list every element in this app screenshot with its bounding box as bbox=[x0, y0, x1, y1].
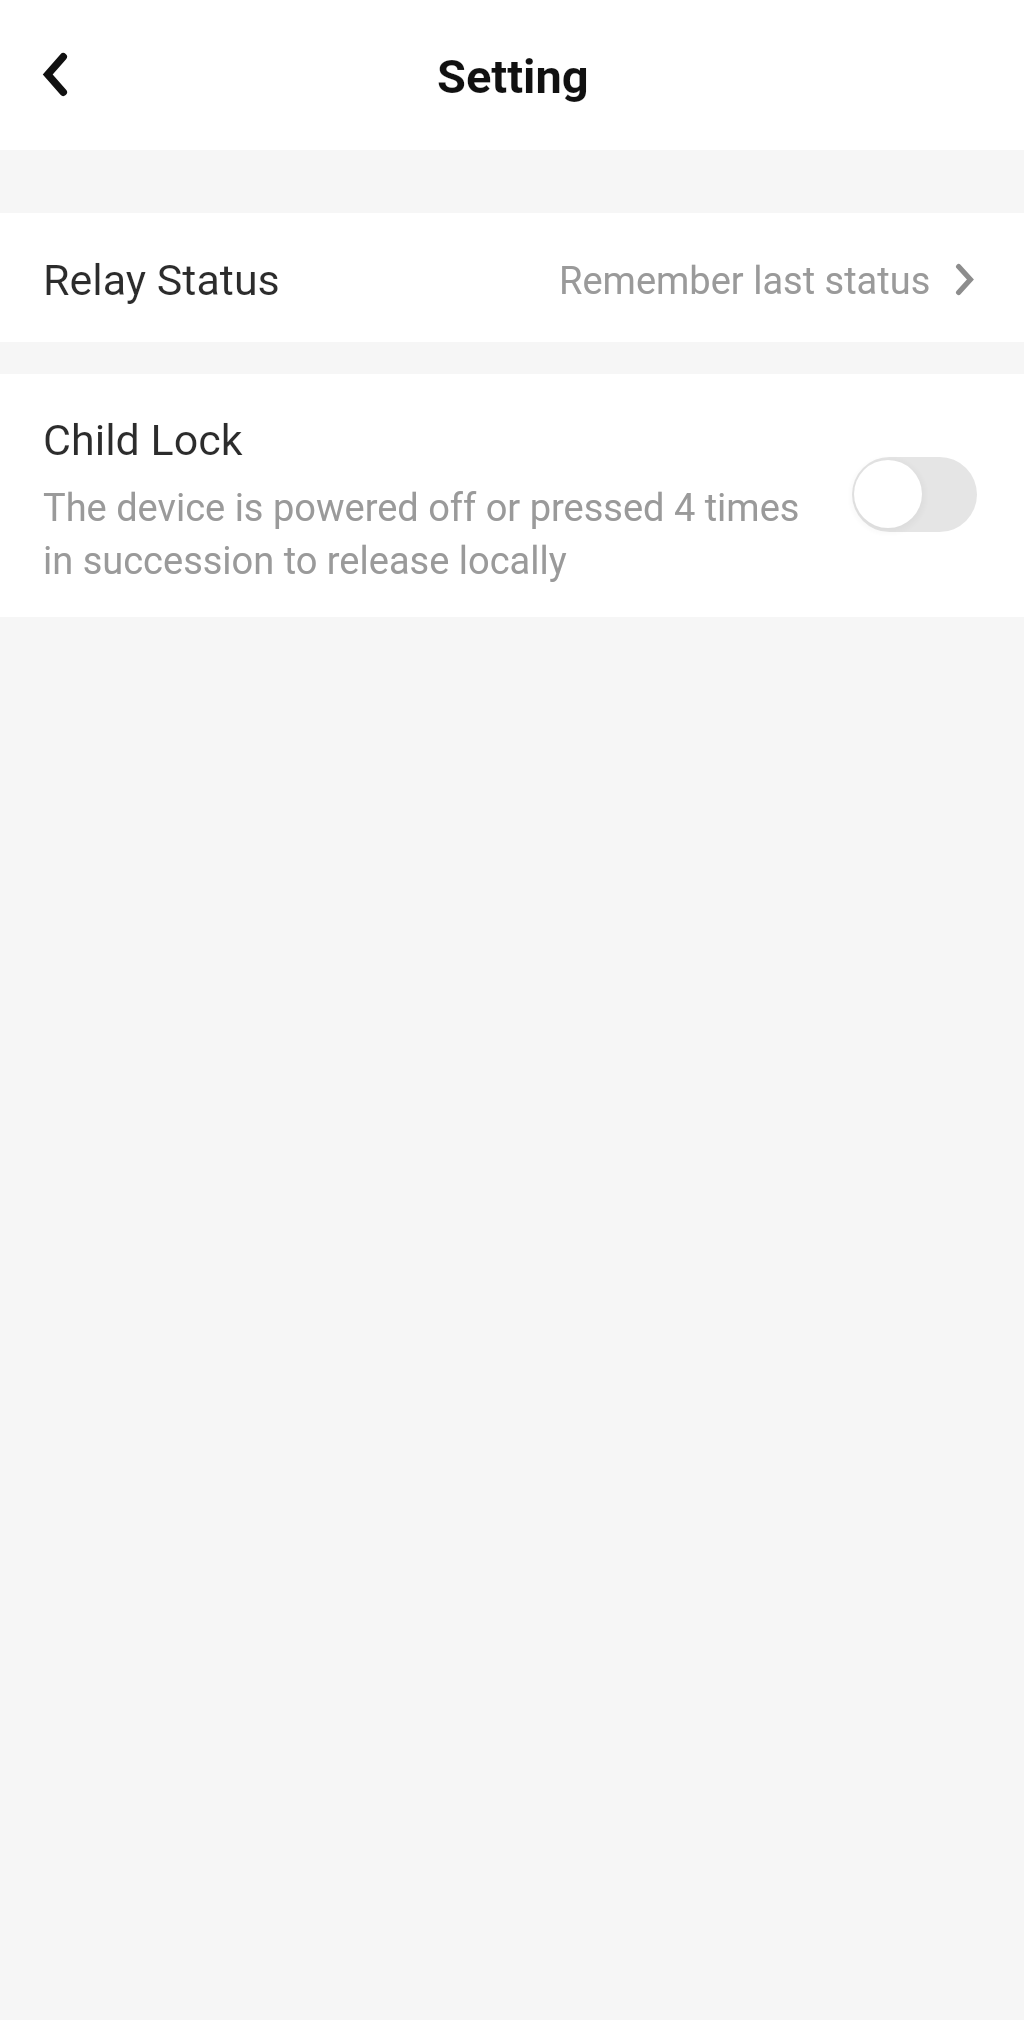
button[interactable]: Child Lock switch, off bbox=[852, 456, 977, 532]
staticText: The device is powered off or pressed 4 t… bbox=[43, 486, 800, 584]
button[interactable]: Back bbox=[11, 24, 99, 126]
staticText: Setting bbox=[437, 49, 589, 104]
button[interactable]: Relay Status bbox=[0, 213, 1024, 342]
staticText: Relay Status bbox=[43, 255, 280, 305]
staticText: Child Lock bbox=[43, 415, 243, 465]
button[interactable]: Child Lock bbox=[0, 374, 1024, 617]
staticText: Remember last status bbox=[559, 259, 931, 304]
